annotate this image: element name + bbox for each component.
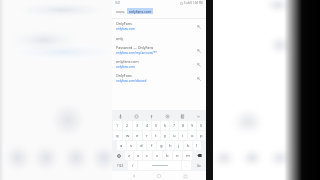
button[interactable]: 6 xyxy=(161,121,169,130)
button[interactable]: Voice input xyxy=(116,112,124,120)
button[interactable]: y xyxy=(161,131,169,140)
staticText: 3 xyxy=(136,123,139,128)
staticText: / xyxy=(132,163,134,168)
staticText: w xyxy=(126,133,130,139)
button[interactable]: onlyfans.com xyxy=(112,57,206,71)
button[interactable]: / xyxy=(128,161,137,170)
button[interactable]: z xyxy=(125,151,133,160)
staticText: f xyxy=(151,143,153,149)
staticText: j xyxy=(178,143,180,149)
button[interactable]: m xyxy=(183,151,192,160)
staticText: p xyxy=(200,133,203,139)
staticText: 7 xyxy=(173,123,176,128)
staticText: g xyxy=(160,143,163,149)
button[interactable]: 8 xyxy=(179,121,187,130)
button[interactable]: s xyxy=(127,141,136,150)
staticText: 5 xyxy=(155,123,158,128)
staticText: 1 xyxy=(116,123,119,128)
button[interactable]: a xyxy=(117,141,126,150)
button[interactable]: c xyxy=(143,151,152,160)
staticText: 8 xyxy=(182,123,185,128)
button[interactable]: Insert suggestion xyxy=(195,23,202,30)
button[interactable]: ?123 xyxy=(113,161,127,170)
button[interactable]: p xyxy=(197,131,205,140)
button[interactable]: g xyxy=(157,141,165,150)
button[interactable]: Clipboard xyxy=(178,112,186,120)
staticText: onlyfans.com/discord xyxy=(116,79,147,83)
button[interactable]: Backspace xyxy=(193,151,205,160)
button[interactable]: j xyxy=(175,141,183,150)
button[interactable]: Stickers xyxy=(132,112,140,120)
staticText: 5 ulo% 1:04 PM xyxy=(184,1,203,5)
staticText: v xyxy=(156,153,159,159)
staticText: b xyxy=(166,153,169,159)
staticText: r xyxy=(146,133,148,139)
staticText: OnlyFans xyxy=(116,21,132,26)
button[interactable]: Go xyxy=(192,161,205,170)
staticText: onlyfans.com xyxy=(116,59,139,64)
staticText: i xyxy=(182,133,184,139)
button[interactable]: 7 xyxy=(170,121,178,130)
staticText: k xyxy=(187,143,190,149)
button[interactable]: GIF xyxy=(147,112,155,120)
button[interactable]: 4 xyxy=(143,121,151,130)
staticText: 6 xyxy=(164,123,167,128)
staticText: h xyxy=(169,143,172,149)
staticText: q xyxy=(116,133,119,139)
button[interactable]: 1 xyxy=(113,121,122,130)
button[interactable]: only xyxy=(112,33,206,43)
button[interactable]: f xyxy=(147,141,156,150)
button[interactable]: Insert suggestion xyxy=(195,47,202,54)
button[interactable]: Shift xyxy=(113,151,124,160)
button[interactable]: 3 xyxy=(133,121,142,130)
button[interactable]: 5 xyxy=(152,121,160,130)
button[interactable]: OnlyFans xyxy=(112,19,206,33)
staticText: onlyfans.com/my/account/** xyxy=(116,51,158,55)
button[interactable]: r xyxy=(143,131,151,140)
button[interactable]: h xyxy=(166,141,174,150)
button[interactable]: t xyxy=(152,131,160,140)
button[interactable]: w xyxy=(123,131,132,140)
button[interactable]: Password — OnlyFans xyxy=(112,43,206,57)
button[interactable]: i xyxy=(179,131,187,140)
staticText: ?123 xyxy=(117,164,124,168)
staticText: x xyxy=(137,153,140,159)
staticText: Go xyxy=(197,164,201,168)
button[interactable]: v xyxy=(153,151,162,160)
button[interactable]: n xyxy=(173,151,182,160)
staticText: a xyxy=(120,143,123,149)
button[interactable]: b xyxy=(163,151,172,160)
staticText: 9:41 xyxy=(115,1,121,5)
button[interactable]: Settings xyxy=(163,112,171,120)
button[interactable]: x xyxy=(134,151,142,160)
button[interactable]: k xyxy=(184,141,192,150)
staticText: onlyfans.com xyxy=(127,9,152,14)
staticText: n xyxy=(176,153,179,159)
button[interactable]: More options xyxy=(194,112,202,120)
button[interactable]: e xyxy=(133,131,142,140)
button[interactable]: OnlyFans xyxy=(112,71,206,85)
button[interactable]: d xyxy=(137,141,146,150)
button[interactable]: l xyxy=(193,141,201,150)
button[interactable]: Insert suggestion xyxy=(195,75,202,82)
staticText: . xyxy=(186,163,187,168)
button[interactable]: Recent apps xyxy=(181,172,189,180)
button[interactable]: Insert suggestion xyxy=(195,61,202,68)
button[interactable]: www. xyxy=(112,6,206,16)
staticText: s xyxy=(130,143,133,149)
button[interactable]: q xyxy=(113,131,122,140)
button[interactable]: o xyxy=(188,131,196,140)
button[interactable]: 9 xyxy=(188,121,196,130)
staticText: 4 xyxy=(146,123,149,128)
button[interactable]: Home xyxy=(155,172,163,180)
staticText: onlyfans.com xyxy=(116,65,135,69)
staticText: only xyxy=(116,36,124,41)
staticText: 2 xyxy=(126,123,129,128)
button[interactable]: 0 xyxy=(197,121,205,130)
button[interactable]: 2 xyxy=(123,121,132,130)
staticText: z xyxy=(128,153,130,159)
button[interactable]: Space xyxy=(138,161,181,170)
button[interactable]: Back xyxy=(130,172,138,180)
button[interactable]: u xyxy=(170,131,178,140)
